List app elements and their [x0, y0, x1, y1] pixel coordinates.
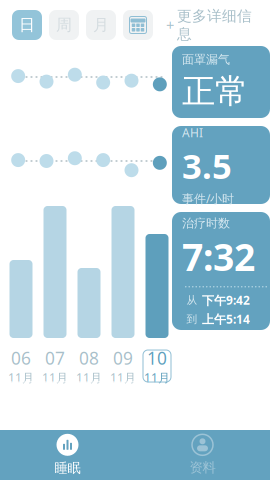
staticText: 到: [186, 313, 197, 326]
staticText: 从: [186, 294, 197, 307]
button[interactable]: 日: [12, 10, 42, 40]
button[interactable]: +: [160, 10, 258, 40]
staticText: 11月: [42, 369, 68, 385]
staticText: 面罩漏气: [182, 52, 230, 67]
staticText: 更多详细信息: [177, 7, 252, 43]
button[interactable]: 08: [72, 348, 106, 384]
button[interactable]: 09: [106, 348, 140, 384]
staticText: 08: [79, 346, 99, 369]
staticText: 11月: [110, 369, 136, 385]
staticText: 09: [113, 346, 133, 369]
staticText: AHI: [182, 124, 203, 140]
staticText: 11月: [144, 369, 170, 385]
staticText: 3.5: [182, 142, 232, 188]
staticText: 下午9:42: [202, 292, 250, 308]
staticText: 周: [56, 15, 72, 35]
staticText: 正常: [182, 71, 248, 112]
staticText: +: [166, 15, 174, 35]
button[interactable]: 10: [140, 348, 174, 384]
staticText: 睡眠: [54, 460, 80, 476]
staticText: 06: [11, 346, 31, 369]
button[interactable]: 日历: [123, 10, 153, 40]
staticText: 上午5:14: [202, 311, 250, 327]
button[interactable]: 周: [49, 10, 79, 40]
staticText: 日: [19, 15, 35, 35]
staticText: 11月: [76, 369, 102, 385]
button[interactable]: 月: [86, 10, 116, 40]
staticText: 资料: [189, 459, 215, 476]
staticText: 事件/小时: [182, 190, 234, 206]
staticText: 7:32: [182, 232, 255, 281]
staticText: 月: [93, 15, 109, 35]
button[interactable]: 06: [4, 348, 38, 384]
button[interactable]: 资料: [135, 430, 270, 480]
staticText: 11月: [8, 369, 34, 385]
staticText: 07: [45, 346, 65, 369]
button[interactable]: 睡眠: [0, 430, 135, 480]
button[interactable]: 07: [38, 348, 72, 384]
staticText: 治疗时数: [182, 216, 230, 231]
staticText: 10: [147, 346, 167, 369]
